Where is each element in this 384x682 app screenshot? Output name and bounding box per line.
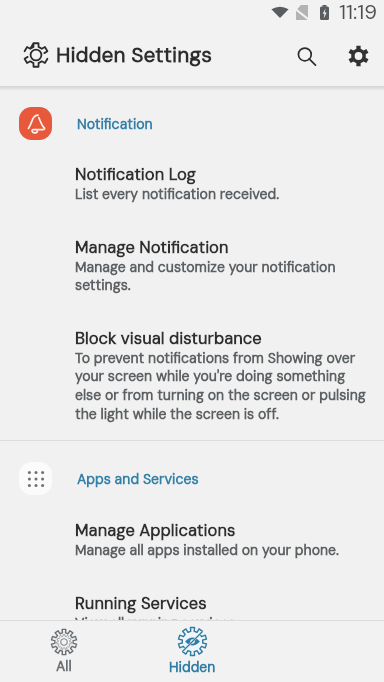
staticText: Running Services [75,593,207,614]
button[interactable]: Hidden [128,621,256,682]
staticText: Hidden Settings [56,41,213,68]
staticText: All [56,657,72,675]
staticText: Block visual disturbance [75,328,262,349]
button[interactable]: Running Services [0,593,384,620]
staticText: Manage and customize your notification s… [75,258,370,295]
button[interactable]: Manage Applications [0,520,384,559]
staticText: To prevent notifications from Showing ov… [75,349,370,424]
staticText: 11:19 [339,0,378,25]
staticText: Notification [77,115,153,133]
button[interactable]: Settings [337,34,380,77]
staticText: Notification Log [75,164,197,185]
staticText: View all running services. [75,614,239,620]
button[interactable]: Search [285,35,328,78]
button[interactable]: Notification [0,107,384,140]
staticText: Manage Notification [75,237,229,258]
staticText: Hidden [169,658,216,676]
button[interactable]: Block visual disturbance [0,328,384,424]
other: App icon [24,43,48,67]
staticText: Manage Applications [75,520,236,541]
button[interactable]: All [0,621,128,682]
staticText: Manage all apps installed on your phone. [75,541,339,559]
button[interactable]: Manage Notification [0,237,384,295]
staticText: List every notification received. [75,185,280,203]
button[interactable]: Apps and Services [0,462,384,495]
staticText: Apps and Services [77,470,199,488]
button[interactable]: Notification Log [0,164,384,203]
